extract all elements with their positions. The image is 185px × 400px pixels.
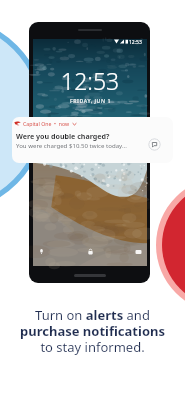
staticText: Capital One • now [23,120,70,127]
staticText: Turn on alerts and purchase notification… [12,306,173,355]
other: Voice assistant [38,248,45,255]
staticText: Were you double charged? [16,131,110,141]
other: Camera [135,248,142,255]
staticText: 12:53 [129,39,142,44]
other: Lock [87,248,94,255]
staticText: FRIDAY, JUN 1 [70,97,111,104]
staticText: You were charged $10.50 twice today... [16,141,127,149]
button[interactable]: Capital One • now [12,117,173,163]
button[interactable]: Reply [148,138,161,151]
staticText: 12:53 [61,65,120,96]
